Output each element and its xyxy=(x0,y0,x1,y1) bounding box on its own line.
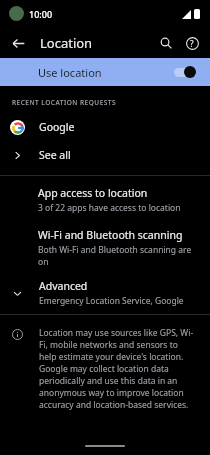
staticText: ? xyxy=(190,38,194,49)
staticText: Advanced xyxy=(39,279,88,293)
staticText: Use location xyxy=(38,65,102,80)
button[interactable]: Wi-Fi and Bluetooth scanning xyxy=(0,224,210,272)
staticText: Emergency Location Service, Google Locat… xyxy=(39,295,198,307)
staticText: Google xyxy=(39,120,75,134)
button[interactable]: Back xyxy=(5,30,31,56)
button[interactable]: Google xyxy=(0,113,210,141)
staticText: RECENT LOCATION REQUESTS xyxy=(12,98,117,107)
staticText: Wi-Fi and Bluetooth scanning xyxy=(38,228,183,242)
button[interactable]: Help xyxy=(179,30,205,56)
staticText: See all xyxy=(39,148,71,162)
button[interactable]: App access to location xyxy=(0,176,210,224)
staticText: App access to location xyxy=(38,186,148,200)
button[interactable]: Advanced xyxy=(0,272,210,314)
button[interactable]: See all xyxy=(0,141,210,169)
staticText: 10:00 xyxy=(29,8,53,20)
button[interactable]: Search xyxy=(153,30,179,56)
staticText: Location xyxy=(40,34,93,52)
button[interactable]: Use location xyxy=(0,58,210,86)
staticText: Location may use sources like GPS, Wi-Fi… xyxy=(39,327,196,411)
staticText: 3 of 22 apps have access to location xyxy=(38,202,181,214)
staticText: Both Wi-Fi and Bluetooth scanning are on xyxy=(38,244,198,268)
